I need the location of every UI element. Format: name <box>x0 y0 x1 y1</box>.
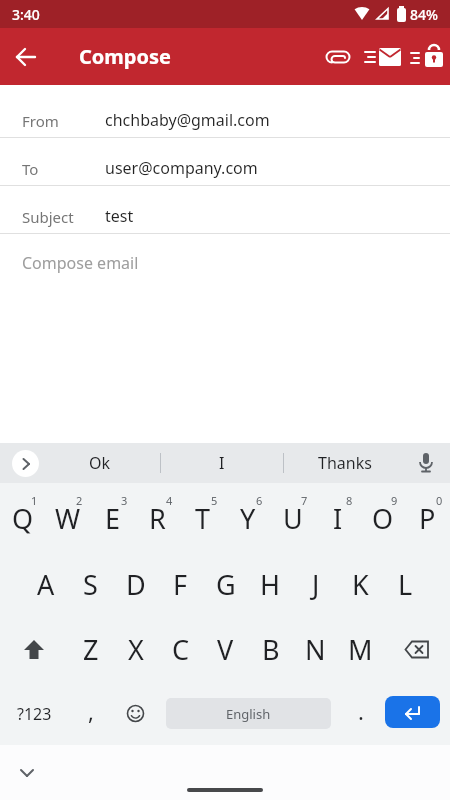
staticText: K <box>352 566 369 603</box>
button[interactable] <box>0 28 52 85</box>
button[interactable] <box>360 28 406 85</box>
staticText: P <box>419 500 436 537</box>
button[interactable] <box>113 682 158 745</box>
button[interactable]: Thanks <box>284 443 406 483</box>
button[interactable]: H <box>248 551 293 617</box>
button[interactable]: . <box>338 682 383 745</box>
button[interactable]: F <box>158 551 203 617</box>
button[interactable]: Y <box>225 485 270 551</box>
button[interactable]: B <box>248 617 293 682</box>
button[interactable]: X <box>113 617 158 682</box>
staticText: Y <box>240 500 256 537</box>
button[interactable]: L <box>383 551 428 617</box>
staticText: Z <box>83 631 99 668</box>
staticText: chchbaby@gmail.com <box>105 109 270 131</box>
staticText: 2 <box>76 493 83 508</box>
staticText: ?123 <box>17 703 52 725</box>
staticText: H <box>260 566 281 603</box>
staticText: 1 <box>31 493 38 508</box>
button[interactable]: I <box>161 443 283 483</box>
staticText: X <box>128 631 144 668</box>
staticText: V <box>217 631 234 668</box>
staticText: A <box>37 566 55 603</box>
staticText: C <box>172 631 190 668</box>
staticText: Subject <box>22 207 74 227</box>
staticText: 0 <box>436 493 443 508</box>
staticText: Thanks <box>318 452 372 474</box>
button[interactable] <box>12 450 39 477</box>
staticText: S <box>83 566 98 603</box>
button[interactable]: O <box>360 485 405 551</box>
button[interactable]: T <box>180 485 225 551</box>
staticText: To <box>22 159 39 179</box>
button[interactable]: K <box>338 551 383 617</box>
button[interactable]: E <box>90 485 135 551</box>
button[interactable]: ?123 <box>0 682 68 745</box>
staticText: . <box>358 696 364 726</box>
staticText: 6 <box>256 493 263 508</box>
staticText: Compose <box>79 43 171 70</box>
staticText: 4 <box>166 493 173 508</box>
button[interactable] <box>406 443 446 483</box>
button[interactable]: M <box>338 617 383 682</box>
staticText: 84% <box>410 5 438 24</box>
staticText: I <box>333 500 343 537</box>
staticText: 5 <box>211 493 218 508</box>
button[interactable] <box>10 751 44 795</box>
button[interactable]: To <box>0 138 450 186</box>
button[interactable] <box>316 28 360 85</box>
button[interactable] <box>383 617 450 682</box>
staticText: T <box>195 500 211 537</box>
staticText: U <box>283 500 303 537</box>
button[interactable]: English <box>158 682 338 745</box>
staticText: D <box>126 566 146 603</box>
button[interactable]: N <box>293 617 338 682</box>
button[interactable]: G <box>203 551 248 617</box>
button[interactable]: J <box>293 551 338 617</box>
staticText: F <box>173 566 188 603</box>
staticText: W <box>55 500 81 537</box>
button[interactable]: Subject <box>0 186 450 234</box>
staticText: J <box>312 566 320 603</box>
button[interactable] <box>383 682 450 745</box>
staticText: Q <box>12 500 34 537</box>
button[interactable]: C <box>158 617 203 682</box>
button[interactable]: R <box>135 485 180 551</box>
staticText: 7 <box>301 493 308 508</box>
staticText: , <box>88 696 94 726</box>
button[interactable]: Ok <box>39 443 160 483</box>
button[interactable]: I <box>315 485 360 551</box>
staticText: test <box>105 205 134 227</box>
button[interactable]: , <box>68 682 113 745</box>
staticText: O <box>372 500 394 537</box>
staticText: B <box>262 631 280 668</box>
staticText: N <box>305 631 326 668</box>
staticText: From <box>22 111 59 131</box>
staticText: L <box>398 566 413 603</box>
staticText: English <box>226 705 271 723</box>
button[interactable]: U <box>270 485 315 551</box>
button[interactable]: Z <box>68 617 113 682</box>
button[interactable]: Compose email <box>22 252 139 274</box>
button[interactable]: A <box>23 551 68 617</box>
staticText: G <box>216 566 236 603</box>
staticText: Ok <box>89 452 111 474</box>
staticText: R <box>149 500 166 537</box>
staticText: 3 <box>121 493 128 508</box>
button[interactable]: From <box>0 90 450 138</box>
button[interactable]: S <box>68 551 113 617</box>
staticText: I <box>219 452 225 474</box>
staticText: M <box>348 631 373 668</box>
button[interactable]: V <box>203 617 248 682</box>
staticText: user@company.com <box>105 157 258 179</box>
button[interactable]: Q <box>0 485 45 551</box>
button[interactable] <box>406 28 448 85</box>
button[interactable]: W <box>45 485 90 551</box>
staticText: 8 <box>346 493 353 508</box>
staticText: 3:40 <box>12 5 40 24</box>
staticText: 9 <box>391 493 398 508</box>
button[interactable] <box>0 617 68 682</box>
button[interactable]: D <box>113 551 158 617</box>
staticText: E <box>105 500 121 537</box>
button[interactable]: P <box>405 485 450 551</box>
